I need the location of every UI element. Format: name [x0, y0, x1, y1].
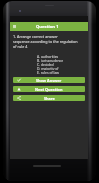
button[interactable]: E. rules of law — [37, 70, 85, 74]
staticText: A. authorities — [37, 54, 59, 58]
staticText: Show Answer — [36, 78, 62, 83]
button[interactable]: Show Answer — [13, 77, 85, 83]
button[interactable]: A. authorities — [37, 54, 85, 58]
button[interactable]: Next Question — [13, 86, 85, 92]
staticText: E. rules of law — [37, 70, 60, 74]
button[interactable]: Share — [13, 95, 85, 101]
button[interactable]: Menu — [11, 23, 18, 30]
button[interactable]: B. jurisprudence — [37, 58, 85, 62]
staticText: Share — [44, 96, 55, 101]
button[interactable]: D. majority of — [37, 66, 85, 70]
staticText: B. jurisprudence — [37, 58, 64, 62]
staticText: D. majority of — [37, 66, 59, 70]
staticText: C. decided — [37, 62, 54, 66]
button[interactable]: C. decided — [37, 62, 85, 66]
staticText: Next Question — [35, 87, 63, 92]
staticText: 1. Arrange correct answer sequence accor… — [13, 34, 78, 49]
staticText: Question 1 — [36, 24, 59, 30]
